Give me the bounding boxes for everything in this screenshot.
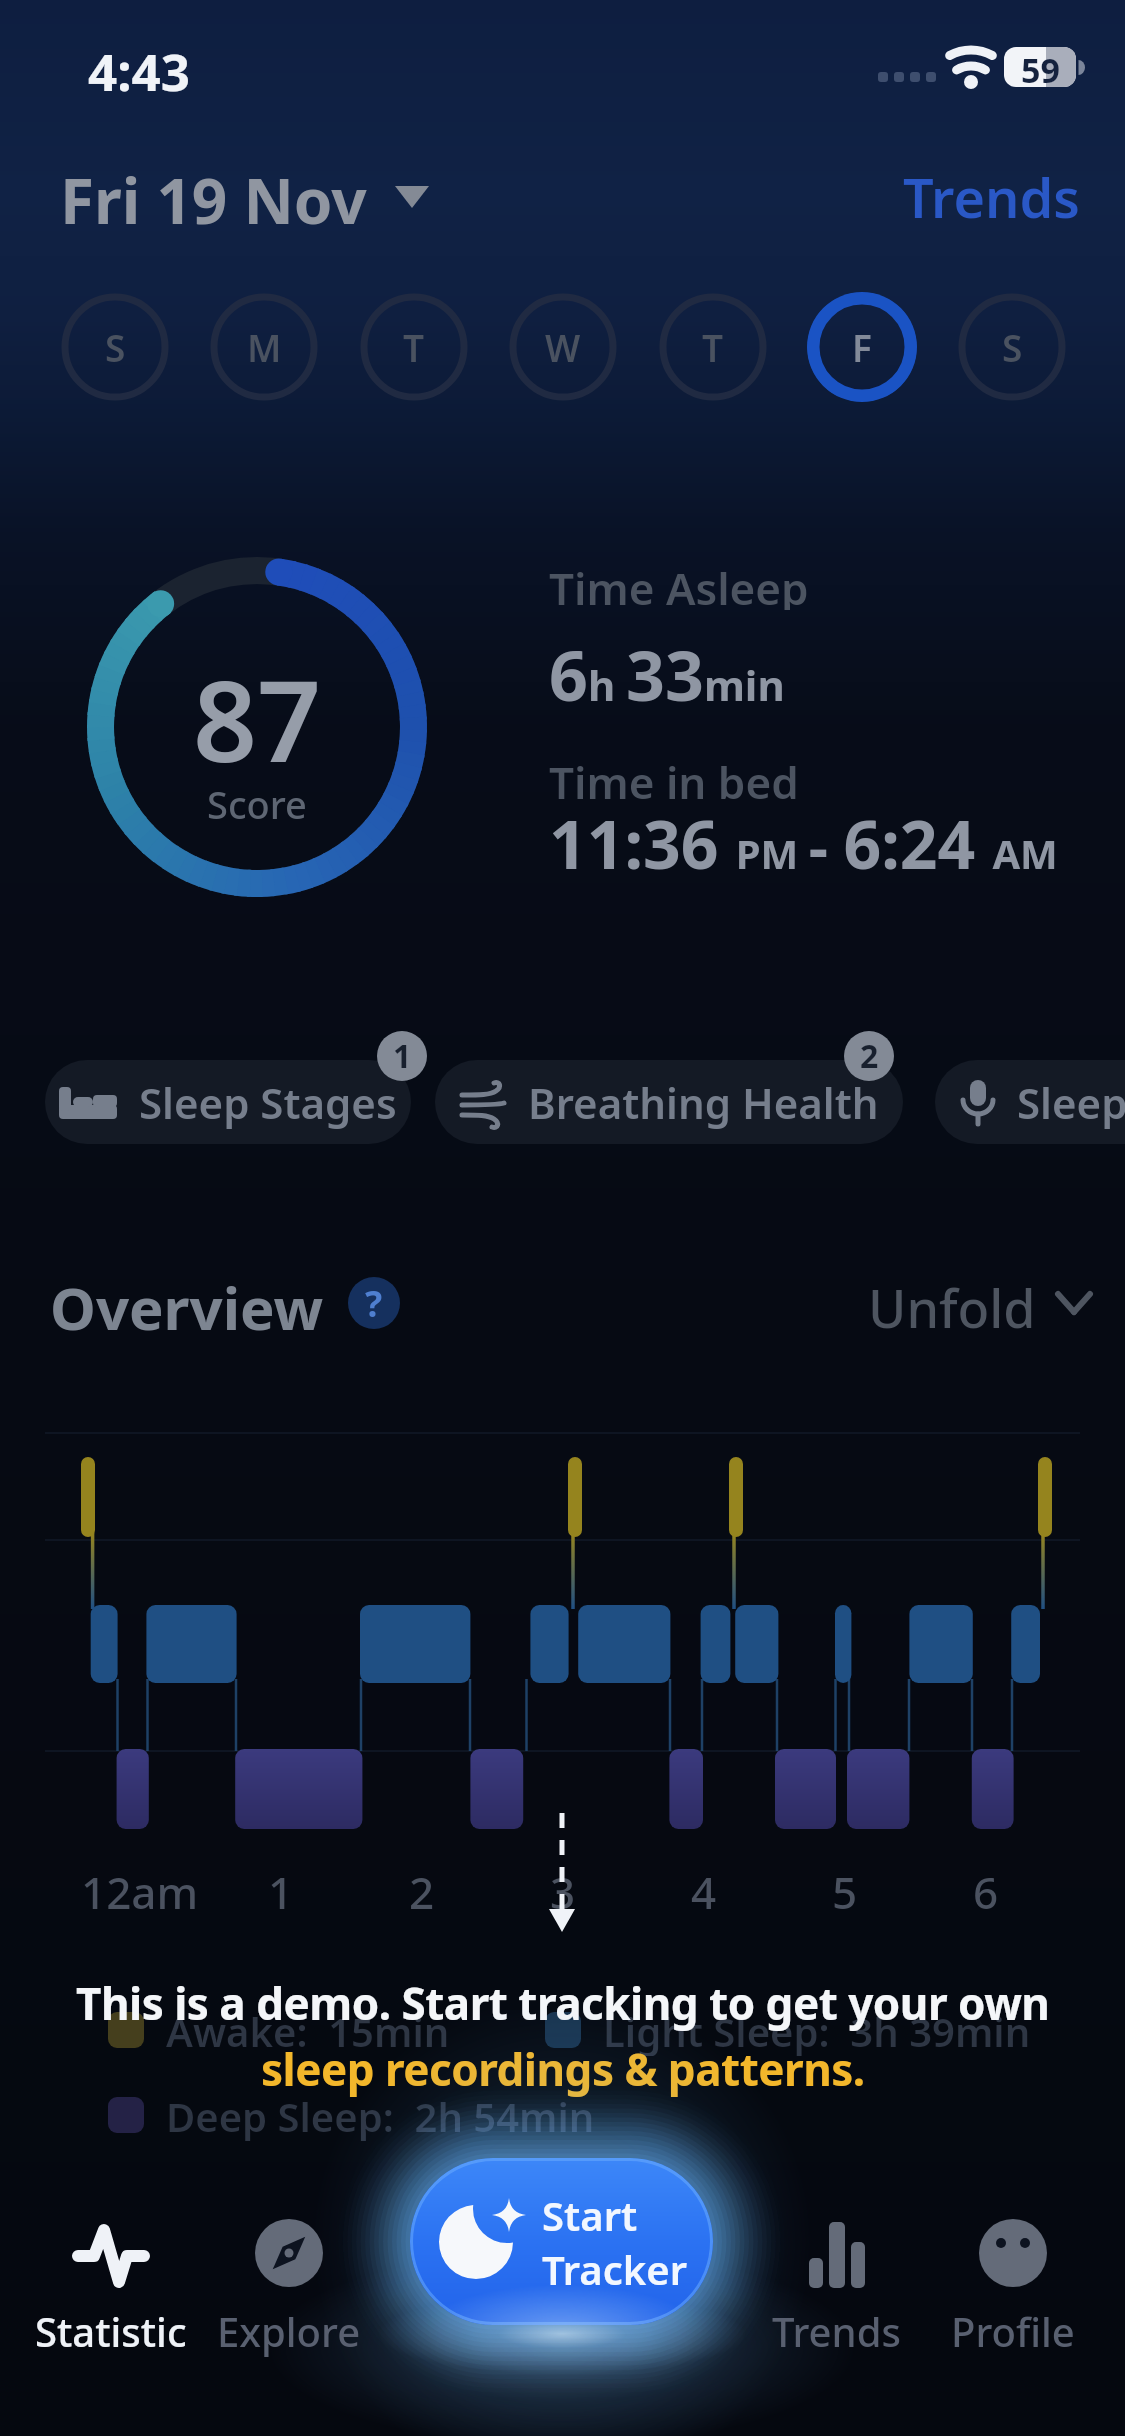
button[interactable]: Trends	[747, 2222, 925, 2372]
staticText: sleep recordings & patterns.	[261, 2039, 865, 2099]
button[interactable]: T	[658, 292, 768, 402]
staticText: Sleep Stages	[139, 1074, 397, 1131]
button[interactable]: Statistic	[22, 2222, 200, 2372]
staticText: Trends	[772, 2304, 901, 2358]
staticText: 4:43	[88, 36, 190, 100]
staticText: This is a demo. Start tracking to get yo…	[76, 1973, 1050, 2033]
staticText: Light Sleep: 3h 39min	[603, 2004, 1031, 2056]
staticText: Tracker	[542, 2242, 688, 2296]
button[interactable]: Sleep Stages	[45, 1060, 411, 1144]
staticText: Deep Sleep: 2h 54min	[166, 2089, 595, 2141]
staticText: 3	[550, 1862, 576, 1918]
staticText: Overview	[50, 1268, 324, 1338]
staticText: M	[247, 322, 282, 372]
staticText: ?	[365, 1279, 383, 1328]
button[interactable]: T	[359, 292, 469, 402]
button[interactable]: M	[209, 292, 319, 402]
button[interactable]: Explore	[200, 2222, 378, 2372]
staticText: Statistic	[35, 2304, 187, 2358]
button[interactable]: W	[508, 292, 618, 402]
staticText: 11:36 PM - 6:24 AM	[549, 798, 1058, 888]
staticText: 6h 33min	[549, 628, 785, 714]
staticText: S	[105, 322, 126, 372]
button[interactable]: Fri 19 Nov	[60, 158, 431, 234]
staticText: 2	[409, 1862, 435, 1918]
staticText: 6	[973, 1862, 999, 1918]
button[interactable]: Trends	[890, 160, 1080, 230]
staticText: 1	[393, 1034, 412, 1078]
staticText: 2	[860, 1034, 879, 1078]
staticText: Awake: 15min	[166, 2004, 450, 2056]
staticText: 1	[268, 1862, 294, 1918]
staticText: F	[852, 322, 872, 372]
button[interactable]: S	[60, 292, 170, 402]
staticText: Start	[542, 2188, 638, 2242]
staticText: 87	[193, 642, 322, 787]
staticText: Time in bed	[549, 752, 799, 804]
staticText: Trends	[903, 160, 1080, 230]
button[interactable]: Unfold	[868, 1272, 1094, 1334]
staticText: W	[545, 322, 581, 372]
staticText: Profile	[951, 2304, 1075, 2358]
button[interactable]: Start	[410, 2158, 713, 2325]
staticText: Unfold	[868, 1272, 1036, 1334]
staticText: Sleep Sounds	[1017, 1074, 1125, 1131]
staticText: T	[702, 322, 724, 372]
staticText: Time Asleep	[549, 558, 809, 610]
staticText: T	[403, 322, 425, 372]
button[interactable]: Breathing Health	[435, 1060, 903, 1144]
staticText: Fri 19 Nov	[60, 158, 367, 234]
button[interactable]: Profile	[924, 2222, 1102, 2372]
button[interactable]: Sleep Sounds	[935, 1060, 1125, 1144]
staticText: Score	[207, 778, 307, 828]
staticText: 12am	[81, 1862, 199, 1918]
staticText: Breathing Health	[528, 1074, 879, 1131]
staticText: 5	[832, 1862, 858, 1918]
button[interactable]: S	[957, 292, 1067, 402]
staticText: 4	[691, 1862, 717, 1918]
staticText: Explore	[217, 2304, 361, 2358]
staticText: 59	[1021, 47, 1060, 87]
staticText: S	[1002, 322, 1023, 372]
button[interactable]: F	[807, 292, 917, 402]
button[interactable]: ?	[348, 1277, 400, 1329]
